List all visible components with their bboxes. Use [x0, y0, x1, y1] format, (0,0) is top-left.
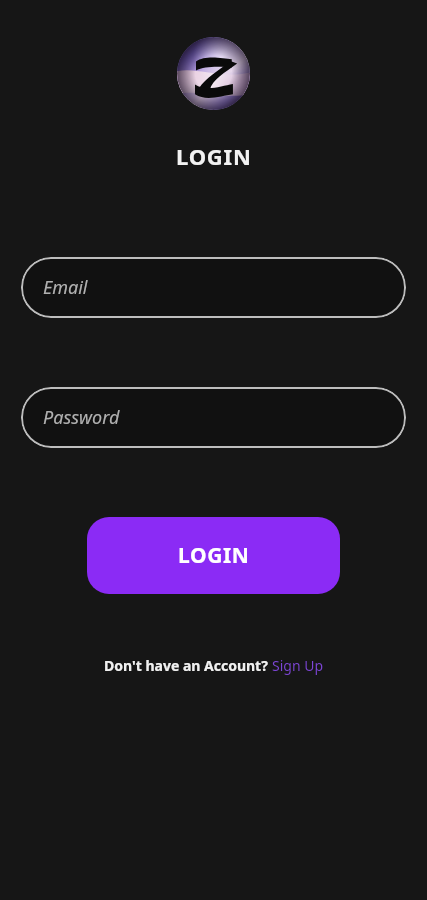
staticText: Don't have an Account? [104, 656, 272, 675]
staticText: Sign Up [272, 656, 324, 675]
staticText: Password [43, 405, 120, 430]
staticText: LOGIN [176, 141, 252, 171]
button[interactable]: Sign Up [272, 656, 324, 675]
button[interactable]: Password [21, 387, 406, 448]
staticText: LOGIN [178, 541, 250, 570]
button[interactable]: LOGIN [87, 517, 340, 594]
button[interactable]: Email [21, 257, 406, 318]
other: App logo [177, 37, 250, 110]
staticText: Email [43, 275, 88, 300]
